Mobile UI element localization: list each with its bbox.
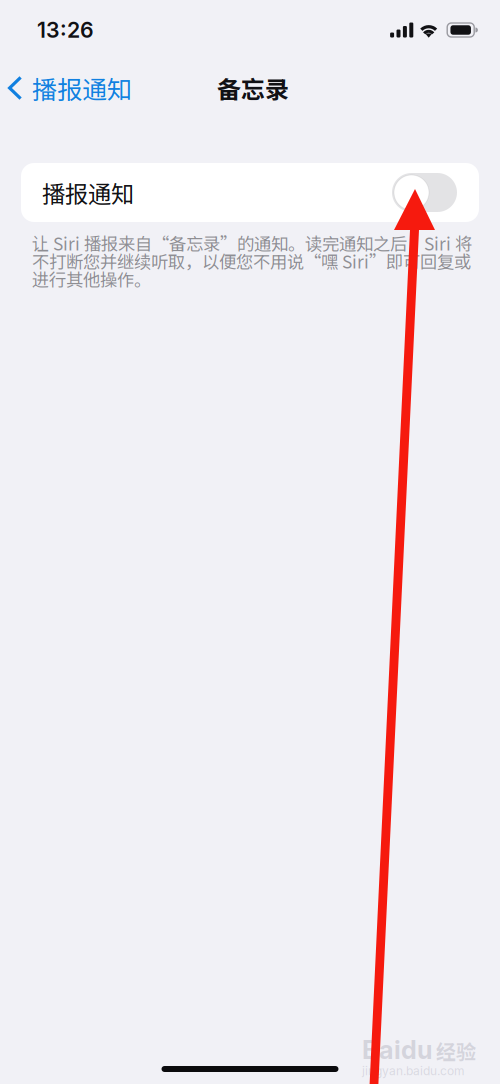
staticText: Baidu <box>362 1034 433 1065</box>
staticText: 不打断您并继续听取，以便您不用说“嘿 Siri”即可回复或 <box>32 248 471 274</box>
staticText: 播报通知 <box>32 70 132 106</box>
staticText: 经验 <box>436 1036 476 1065</box>
button[interactable]: 播报通知 <box>0 65 142 111</box>
staticText: 进行其他操作。 <box>32 266 151 292</box>
staticText: 让 Siri 播报来自“备忘录”的通知。读完通知之后，Siri 将 <box>32 230 472 256</box>
staticText: jingyan.baidu.com <box>362 1064 465 1078</box>
staticText: 13:26 <box>37 17 94 43</box>
button[interactable]: 播报通知 <box>21 163 479 222</box>
staticText: 备忘录 <box>217 71 289 105</box>
staticText: 播报通知 <box>42 176 134 209</box>
